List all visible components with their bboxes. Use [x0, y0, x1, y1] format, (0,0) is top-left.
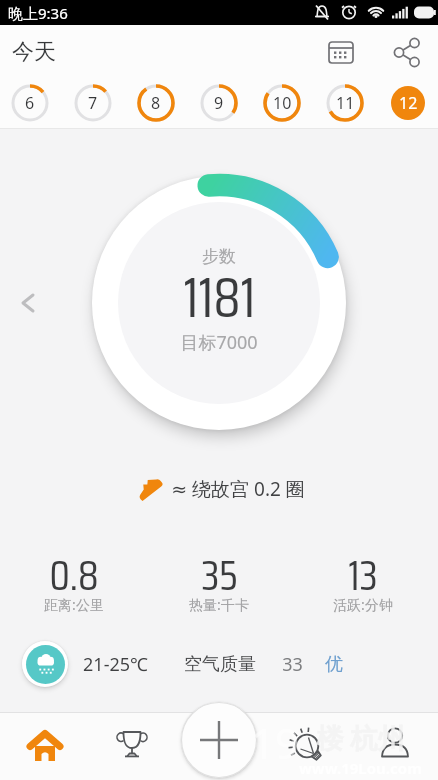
- button[interactable]: [328, 39, 354, 65]
- button[interactable]: 6: [11, 84, 49, 122]
- staticText: www.19Lou.com: [299, 758, 422, 778]
- button[interactable]: 11: [326, 84, 364, 122]
- staticText: 步数: [202, 246, 236, 267]
- button[interactable]: ≈ 绕故宫 0.2 圈: [133, 473, 305, 505]
- button[interactable]: 10: [263, 84, 301, 122]
- staticText: 8: [151, 92, 161, 114]
- staticText: 33: [282, 652, 303, 677]
- staticText: 今天: [12, 38, 56, 66]
- staticText: 0.8: [49, 542, 99, 608]
- staticText: 35: [201, 542, 238, 608]
- staticText: 热量:千卡: [189, 595, 249, 614]
- staticText: 19: [251, 714, 300, 771]
- button[interactable]: 8: [137, 84, 175, 122]
- staticText: 10: [273, 92, 292, 114]
- staticText: 6: [25, 92, 35, 114]
- button[interactable]: [23, 723, 67, 767]
- button[interactable]: 7: [74, 84, 112, 122]
- staticText: 空气质量: [184, 653, 256, 676]
- button[interactable]: [181, 702, 257, 778]
- staticText: 楼 杭州: [316, 719, 405, 756]
- staticText: 距离:公里: [44, 595, 104, 614]
- staticText: 活跃:分钟: [333, 595, 393, 614]
- staticText: 优: [325, 653, 343, 676]
- staticText: 目标7000: [180, 330, 258, 355]
- staticText: 21-25℃: [83, 652, 148, 677]
- staticText: 13: [348, 542, 378, 608]
- button[interactable]: 9: [200, 84, 238, 122]
- button[interactable]: [394, 39, 420, 65]
- button[interactable]: [13, 288, 43, 318]
- button[interactable]: [286, 719, 334, 767]
- staticText: 9: [214, 92, 224, 114]
- staticText: 12: [399, 92, 418, 114]
- staticText: 晚上9:36: [8, 3, 68, 23]
- button[interactable]: [110, 723, 154, 767]
- button[interactable]: 12: [389, 84, 427, 122]
- staticText: 11: [336, 92, 355, 114]
- button[interactable]: [373, 723, 417, 767]
- staticText: 1181: [183, 255, 256, 342]
- staticText: ≈ 绕故宫 0.2 圈: [171, 476, 305, 502]
- staticText: 7: [88, 92, 98, 114]
